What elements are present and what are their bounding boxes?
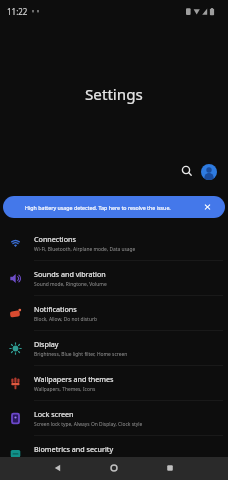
staticText: Brightness, Blue light filter, Home scre… — [34, 351, 128, 358]
staticText: Connections — [34, 234, 76, 244]
button[interactable] — [43, 457, 71, 479]
staticText: Wallpapers, Themes, Icons — [34, 386, 96, 393]
button[interactable] — [179, 163, 195, 179]
staticText: Display — [34, 339, 59, 349]
staticText: Sound mode, Ringtone, Volume — [34, 281, 107, 288]
staticText: Settings — [85, 84, 143, 105]
button[interactable] — [100, 457, 128, 479]
staticText: Wallpapers and themes — [34, 374, 114, 384]
button[interactable]: Notifications — [0, 296, 228, 331]
button[interactable] — [156, 457, 184, 479]
button[interactable]: Biometrics and security — [0, 436, 228, 471]
button[interactable]: Sounds and vibration — [0, 261, 228, 296]
button[interactable]: Lock screen — [0, 401, 228, 436]
staticText: Wi-Fi, Bluetooth, Airplane mode, Data us… — [34, 246, 136, 253]
button[interactable]: Connections — [0, 226, 228, 261]
staticText: Screen lock type, Always On Display, Clo… — [34, 421, 143, 428]
staticText: Notifications — [34, 304, 77, 314]
staticText: 11:22 — [7, 6, 28, 17]
button[interactable] — [201, 164, 217, 180]
button[interactable]: High battery usage detected. Tap here to… — [3, 196, 225, 218]
staticText: Biometrics and security — [34, 444, 114, 454]
staticText: Lock screen — [34, 409, 74, 419]
staticText: Block, Allow, Do not disturb — [34, 316, 97, 323]
button[interactable]: Display — [0, 331, 228, 366]
staticText: High battery usage detected. Tap here to… — [25, 204, 171, 211]
button[interactable]: Wallpapers and themes — [0, 366, 228, 401]
staticText: Sounds and vibration — [34, 269, 106, 279]
